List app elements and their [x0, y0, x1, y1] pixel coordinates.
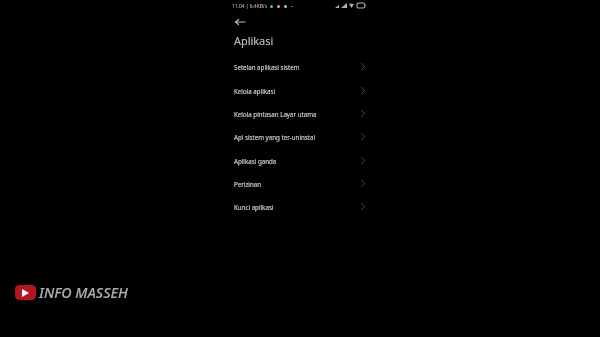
button[interactable]: Perizinan: [222, 172, 390, 195]
button[interactable]: Aplikasi ganda: [222, 149, 390, 172]
staticText: Kelola pintasan Layar utama: [234, 110, 317, 118]
staticText: INFO MASSEH: [39, 283, 128, 302]
staticText: Aplikasi ganda: [234, 157, 277, 165]
staticText: Aplikasi: [234, 33, 274, 48]
button[interactable]: Setelan aplikasi sistem: [222, 55, 390, 78]
staticText: Apl sistem yang ter-uninstal: [234, 133, 316, 141]
button[interactable]: Kelola pintasan Layar utama: [222, 102, 390, 125]
staticText: Kelola aplikasi: [234, 87, 276, 95]
button[interactable]: Back: [231, 13, 249, 30]
button[interactable]: Kunci aplikasi: [222, 195, 390, 218]
button[interactable]: Apl sistem yang ter-uninstal: [222, 125, 390, 148]
button[interactable]: Kelola aplikasi: [222, 79, 390, 102]
staticText: Setelan aplikasi sistem: [234, 63, 300, 71]
staticText: Perizinan: [234, 180, 262, 188]
staticText: Kunci aplikasi: [234, 203, 274, 211]
staticText: 11.04 | 6,4KB/s: [232, 3, 268, 10]
